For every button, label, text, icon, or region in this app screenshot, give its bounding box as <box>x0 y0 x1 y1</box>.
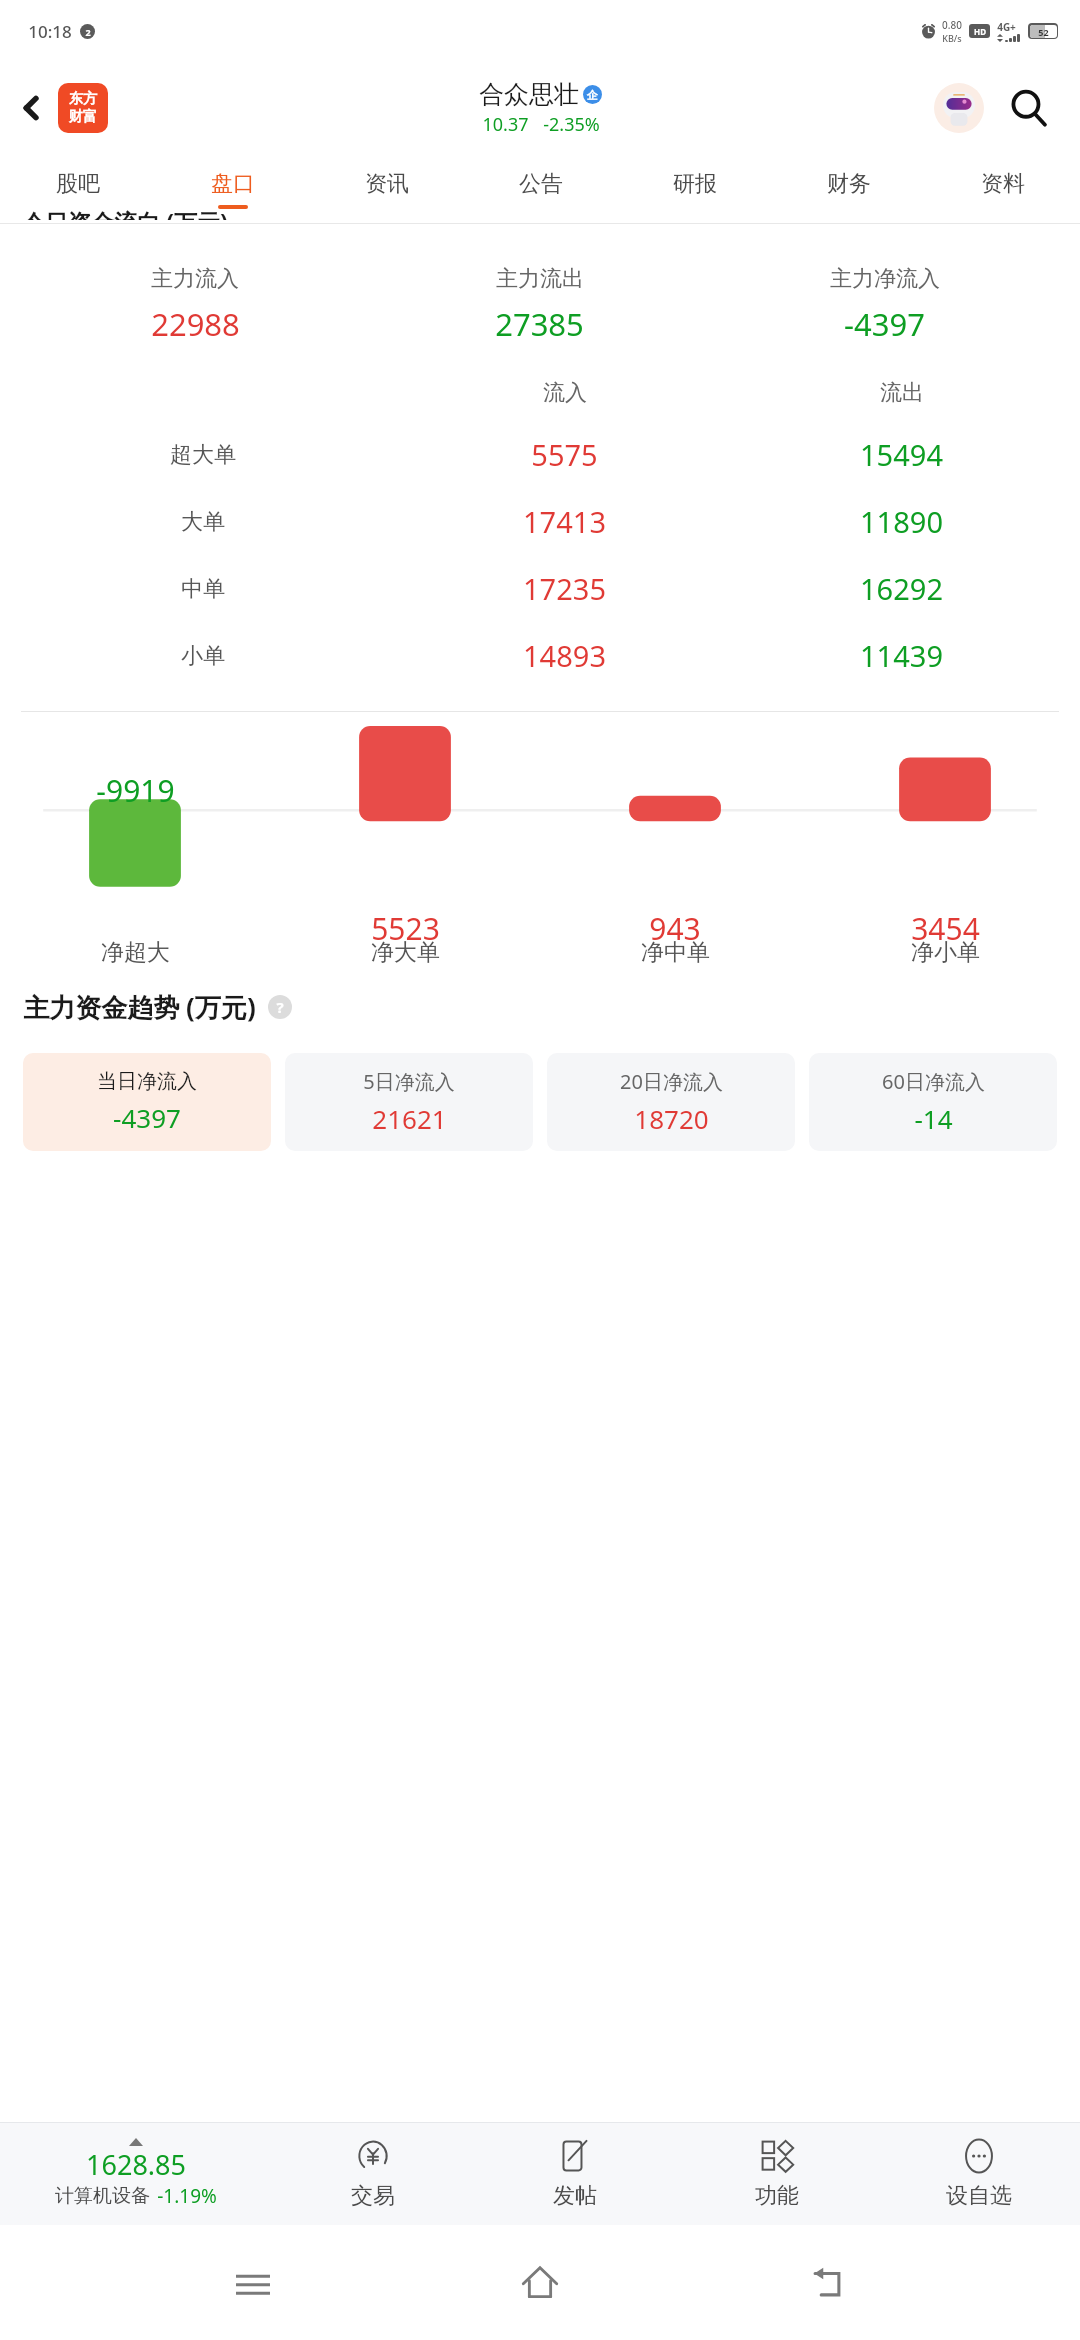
staticText: 0.80 <box>942 18 962 32</box>
staticText: -4397 <box>113 1100 181 1135</box>
staticText: 大单 <box>181 508 225 536</box>
staticText: 15494 <box>860 435 943 474</box>
staticText: 交易 <box>351 2182 395 2210</box>
button[interactable]: 5523 <box>270 712 540 967</box>
button[interactable]: 合众思壮 <box>479 79 602 137</box>
staticText: 21621 <box>372 1101 447 1136</box>
staticText: 主力资金趋势 (万元) <box>23 989 256 1025</box>
button[interactable]: 大单 <box>10 488 1070 555</box>
staticText: 发帖 <box>553 2182 597 2210</box>
staticText: 18720 <box>634 1101 709 1136</box>
staticText: 943 <box>649 908 701 949</box>
staticText: 净大单 <box>371 938 440 967</box>
staticText: 盘口 <box>211 170 255 198</box>
staticText: 60日净流入 <box>882 1068 985 1095</box>
staticText: 22988 <box>151 303 240 345</box>
staticText: 公告 <box>519 170 563 198</box>
button[interactable]: 20日净流入 <box>547 1053 795 1151</box>
staticText: 5575 <box>531 435 598 474</box>
staticText: 主力流入 <box>151 265 239 293</box>
button[interactable]: 5日净流入 <box>285 1053 533 1151</box>
staticText: 主力流出 <box>496 265 584 293</box>
staticText: 5日净流入 <box>363 1068 455 1095</box>
button[interactable]: Recents <box>218 2248 288 2318</box>
button[interactable]: Assistant <box>934 83 984 133</box>
staticText: 财务 <box>827 170 871 198</box>
button[interactable]: -9919 <box>0 712 270 967</box>
button[interactable]: 设自选 <box>878 2122 1080 2225</box>
staticText: 14893 <box>523 636 606 675</box>
staticText: 净小单 <box>911 938 980 967</box>
staticText: 超大单 <box>170 441 236 469</box>
staticText: 东方 <box>69 90 97 108</box>
button[interactable]: 研报 <box>618 154 772 224</box>
button[interactable]: 发帖 <box>474 2122 676 2225</box>
staticText: -4397 <box>844 303 925 345</box>
button[interactable]: 主力流入 <box>23 247 1057 357</box>
staticText: -14 <box>914 1101 953 1136</box>
staticText: 流出 <box>880 379 924 407</box>
staticText: HD <box>974 26 986 37</box>
staticText: -2.35% <box>543 112 600 137</box>
button[interactable]: 股吧 <box>0 154 155 224</box>
staticText: 11890 <box>860 502 943 541</box>
button[interactable]: Back <box>6 82 58 134</box>
staticText: 设自选 <box>946 2182 1012 2210</box>
staticText: 2 <box>85 26 91 38</box>
button[interactable]: 超大单 <box>10 421 1070 488</box>
staticText: 小单 <box>181 642 225 670</box>
staticText: 财富 <box>69 108 97 126</box>
staticText: 主力净流入 <box>830 265 940 293</box>
staticText: 计算机设备 <box>55 2184 150 2208</box>
button[interactable]: 财务 <box>772 154 926 224</box>
staticText: 5523 <box>371 908 440 949</box>
staticText: 4G+ <box>997 20 1016 34</box>
button[interactable]: 资讯 <box>310 154 464 224</box>
staticText: 净中单 <box>641 938 710 967</box>
staticText: 资料 <box>981 170 1025 198</box>
staticText: 当日净流入 <box>97 1069 197 1094</box>
button[interactable]: Home <box>505 2248 575 2318</box>
staticText: 企 <box>587 88 598 102</box>
staticText: 今日资金流向 (万元) <box>22 206 228 220</box>
staticText: 16292 <box>860 569 943 608</box>
button[interactable]: 中单 <box>10 555 1070 622</box>
button[interactable]: 60日净流入 <box>809 1053 1057 1151</box>
button[interactable]: 3454 <box>810 712 1080 967</box>
staticText: 资讯 <box>365 170 409 198</box>
staticText: 20日净流入 <box>620 1068 723 1095</box>
staticText: 功能 <box>755 2182 799 2210</box>
button[interactable]: 交易 <box>272 2122 474 2225</box>
staticText: 合众思壮 <box>479 79 579 110</box>
staticText: 27385 <box>495 303 584 345</box>
staticText: -9919 <box>96 770 175 811</box>
staticText: ? <box>276 997 284 1017</box>
button[interactable]: 1628.85 <box>0 2122 272 2225</box>
staticText: 股吧 <box>56 170 100 198</box>
staticText: 52 <box>1038 26 1049 38</box>
button[interactable]: 公告 <box>464 154 618 224</box>
button[interactable]: Back <box>793 2248 863 2318</box>
staticText: 11439 <box>860 636 943 675</box>
staticText: -1.19% <box>157 2183 217 2209</box>
staticText: 流入 <box>543 379 587 407</box>
button[interactable]: 功能 <box>676 2122 878 2225</box>
staticText: 净超大 <box>101 938 170 967</box>
staticText: 中单 <box>181 575 225 603</box>
button[interactable]: 当日净流入 <box>23 1053 271 1151</box>
button[interactable]: Help <box>268 995 292 1019</box>
staticText: 10:18 <box>28 20 72 43</box>
button[interactable]: 小单 <box>10 622 1070 689</box>
staticText: 1628.85 <box>86 2146 186 2183</box>
button[interactable]: 943 <box>540 712 810 967</box>
staticText: 研报 <box>673 170 717 198</box>
staticText: KB/s <box>942 32 962 44</box>
staticText: 17413 <box>523 502 606 541</box>
staticText: 10.37 <box>482 112 529 137</box>
button[interactable]: 盘口 <box>155 154 310 224</box>
button[interactable]: East Money <box>58 83 108 133</box>
staticText: 17235 <box>523 569 606 608</box>
button[interactable]: 资料 <box>926 154 1080 224</box>
button[interactable]: Search <box>998 77 1060 139</box>
staticText: 3454 <box>911 908 980 949</box>
